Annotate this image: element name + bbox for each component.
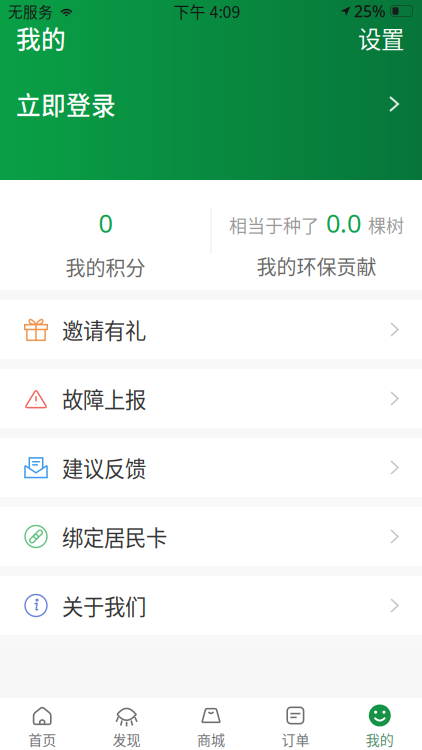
staticText: 0.0 [319,206,368,240]
staticText: 我的 [366,729,394,749]
button[interactable]: 立即登录 [0,79,422,129]
button[interactable]: 订单 [253,698,338,750]
staticText: 下午 4:09 [173,0,240,23]
staticText: 我的积分 [65,253,145,282]
staticText: 0 [98,206,112,240]
button[interactable]: 绑定居民卡 [0,507,422,576]
staticText: 棵树 [368,212,404,238]
button[interactable]: 商城 [169,698,253,750]
button[interactable]: 建议反馈 [0,438,422,507]
staticText: 立即登录 [16,86,116,122]
staticText: 绑定居民卡 [62,521,167,552]
staticText: 我的 [16,20,66,56]
button[interactable]: 关于我们 [0,576,422,645]
staticText: 25% [354,0,386,22]
staticText: 故障上报 [62,383,146,414]
staticText: 邀请有礼 [62,314,146,345]
button[interactable]: 首页 [0,698,84,750]
button[interactable]: 邀请有礼 [0,300,422,369]
staticText: 首页 [28,729,56,749]
staticText: 建议反馈 [62,452,146,483]
button[interactable]: 发现 [84,698,169,750]
staticText: 商城 [197,729,225,749]
staticText: 发现 [113,729,141,749]
staticText: 设置 [358,21,404,55]
staticText: 关于我们 [62,590,146,621]
staticText: 我的环保贡献 [256,252,376,281]
staticText: 无服务 [8,0,53,22]
button[interactable]: 设置 [356,21,406,55]
button[interactable]: 故障上报 [0,369,422,438]
button[interactable]: 我的 [338,698,422,750]
staticText: 相当于种了 [229,212,319,238]
staticText: 订单 [281,729,309,749]
